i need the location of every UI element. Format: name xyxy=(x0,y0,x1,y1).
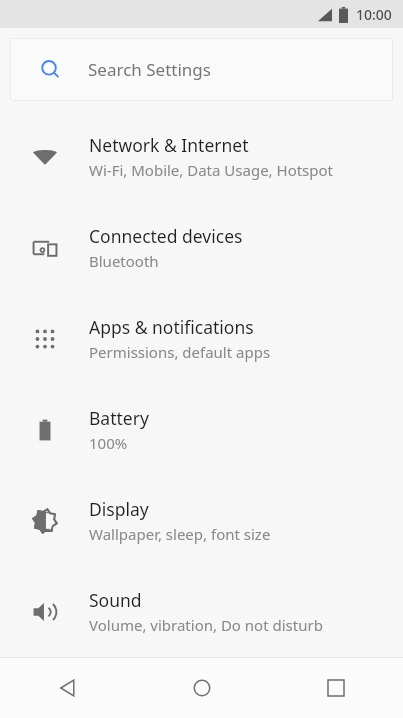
button[interactable]: Apps & notifications xyxy=(0,293,403,384)
button[interactable]: Search Settings xyxy=(10,38,393,101)
staticText: Battery xyxy=(89,406,149,430)
button[interactable]: Back xyxy=(0,658,135,718)
button[interactable]: Battery xyxy=(0,384,403,475)
staticText: Network & Internet xyxy=(89,133,249,157)
staticText: Display xyxy=(89,497,149,521)
button[interactable]: Connected devices xyxy=(0,202,403,293)
button[interactable]: Sound xyxy=(0,566,403,657)
staticText: Wi-Fi, Mobile, Data Usage, Hotspot xyxy=(89,160,334,180)
staticText: 100% xyxy=(89,433,128,453)
button[interactable]: Home xyxy=(135,658,269,718)
staticText: Wallpaper, sleep, font size xyxy=(89,524,271,544)
staticText: Search Settings xyxy=(88,58,211,81)
staticText: Apps & notifications xyxy=(89,315,254,339)
staticText: Volume, vibration, Do not disturb xyxy=(89,615,323,635)
staticText: Sound xyxy=(89,588,142,612)
staticText: 10:00 xyxy=(356,5,392,24)
button[interactable]: Display xyxy=(0,475,403,566)
button[interactable]: Network & Internet xyxy=(0,111,403,202)
staticText: Permissions, default apps xyxy=(89,342,271,362)
button[interactable]: Recent apps xyxy=(269,658,403,718)
staticText: Bluetooth xyxy=(89,251,159,271)
staticText: Connected devices xyxy=(89,224,243,248)
